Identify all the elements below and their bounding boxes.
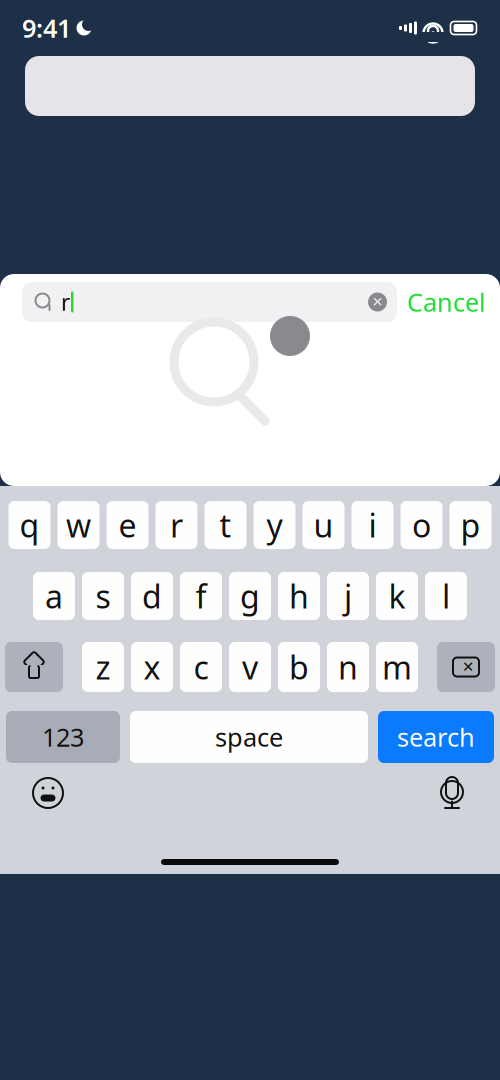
staticText: 123 <box>42 720 84 754</box>
button[interactable]: space <box>130 711 368 763</box>
staticText: w <box>66 504 91 546</box>
staticText: 9:41 <box>22 11 71 45</box>
staticText: a <box>45 575 63 617</box>
staticText: i <box>368 504 376 546</box>
staticText: o <box>412 504 431 546</box>
button[interactable]: l <box>425 572 467 620</box>
staticText: n <box>338 646 358 688</box>
staticText: r <box>61 287 70 317</box>
staticText: k <box>388 575 405 617</box>
button[interactable]: z <box>82 642 124 692</box>
button[interactable]: q <box>8 501 50 549</box>
button[interactable]: b <box>278 642 320 692</box>
button[interactable]: x <box>131 642 173 692</box>
staticText: f <box>195 575 206 617</box>
staticText: space <box>215 720 283 754</box>
button[interactable]: g <box>229 572 271 620</box>
button[interactable]: 123 <box>6 711 120 763</box>
staticText: search <box>397 720 475 754</box>
staticText: s <box>95 575 110 617</box>
button[interactable]: m <box>376 642 418 692</box>
staticText: y <box>266 504 282 546</box>
button[interactable]: Shift <box>5 642 63 692</box>
staticText: z <box>95 646 110 688</box>
staticText: c <box>193 646 208 688</box>
staticText: g <box>240 575 260 617</box>
button[interactable]: r <box>155 501 197 549</box>
button[interactable]: a <box>33 572 75 620</box>
button[interactable]: d <box>131 572 173 620</box>
staticText: Cancel <box>407 285 486 319</box>
staticText: h <box>289 575 309 617</box>
button[interactable]: v <box>229 642 271 692</box>
button[interactable]: o <box>400 501 442 549</box>
staticText: e <box>118 504 136 546</box>
staticText: r <box>170 504 183 546</box>
button[interactable]: j <box>327 572 369 620</box>
button[interactable]: i <box>351 501 393 549</box>
button[interactable]: Delete <box>437 642 495 692</box>
button[interactable]: p <box>449 501 491 549</box>
button[interactable]: k <box>376 572 418 620</box>
staticText: j <box>344 575 352 617</box>
button[interactable]: n <box>327 642 369 692</box>
button[interactable]: s <box>82 572 124 620</box>
button[interactable]: Dictate <box>432 773 472 813</box>
button[interactable]: u <box>302 501 344 549</box>
button[interactable]: e <box>106 501 148 549</box>
button[interactable]: Emoji <box>28 773 68 813</box>
staticText: q <box>19 504 39 546</box>
staticText: ✕ <box>462 659 474 675</box>
button[interactable]: search <box>378 711 494 763</box>
button[interactable]: r <box>22 282 397 322</box>
staticText: b <box>289 646 309 688</box>
staticText: u <box>313 504 333 546</box>
button[interactable]: t <box>204 501 246 549</box>
button[interactable]: Cancel <box>407 277 486 327</box>
staticText: x <box>143 646 160 688</box>
staticText: m <box>382 646 412 688</box>
staticText: p <box>460 504 480 546</box>
staticText: d <box>142 575 162 617</box>
button[interactable]: h <box>278 572 320 620</box>
button[interactable]: c <box>180 642 222 692</box>
button[interactable]: w <box>57 501 99 549</box>
staticText: v <box>242 646 258 688</box>
button[interactable]: y <box>253 501 295 549</box>
staticText: t <box>219 504 231 546</box>
button[interactable]: f <box>180 572 222 620</box>
staticText: ✕ <box>372 294 383 309</box>
staticText: l <box>442 575 450 617</box>
